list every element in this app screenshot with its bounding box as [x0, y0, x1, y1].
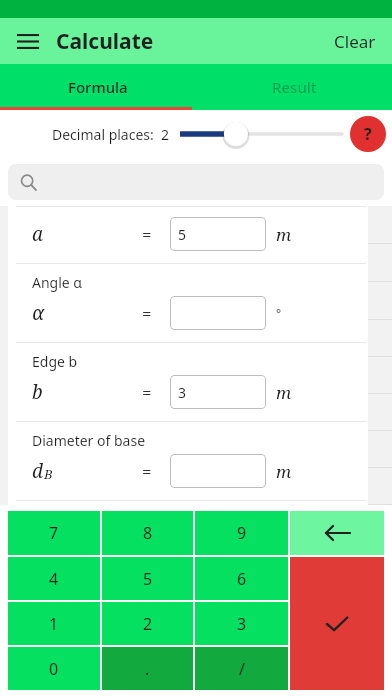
button[interactable]: Formula	[0, 64, 196, 110]
button[interactable]: 5	[102, 557, 193, 600]
staticText: α	[32, 300, 45, 326]
button[interactable]	[170, 454, 266, 488]
button[interactable]: Backspace	[290, 511, 384, 555]
staticText: 9	[237, 522, 247, 544]
staticText: 2	[143, 613, 153, 635]
button[interactable]: 5	[170, 217, 266, 251]
staticText: m	[276, 460, 292, 483]
button[interactable]: 0	[8, 647, 100, 690]
button[interactable]: 7	[8, 511, 100, 555]
button[interactable]: Result	[196, 64, 392, 110]
staticText: 8	[143, 522, 153, 544]
staticText: 0	[49, 658, 59, 680]
staticText: 1	[49, 613, 59, 635]
button[interactable]: Open navigation menu	[8, 21, 48, 61]
staticText: 6	[237, 568, 247, 590]
button[interactable]: 9	[195, 511, 288, 555]
button[interactable]	[170, 296, 266, 330]
staticText: ?	[364, 123, 372, 145]
button[interactable]: 1	[8, 602, 100, 645]
button[interactable]: 8	[102, 511, 193, 555]
staticText: 7	[49, 522, 59, 544]
button[interactable]: 6	[195, 557, 288, 600]
button[interactable]: Help	[350, 116, 386, 152]
button[interactable]: Clear	[318, 20, 392, 63]
staticText: 4	[49, 568, 59, 590]
staticText: Calculate	[56, 27, 154, 56]
button[interactable]: Confirm	[290, 557, 384, 690]
staticText: b	[32, 379, 43, 405]
button[interactable]: 4	[8, 557, 100, 600]
staticText: 3	[178, 383, 187, 402]
button[interactable]: .	[102, 647, 193, 690]
button[interactable]: 2	[102, 602, 193, 645]
button[interactable]	[180, 110, 342, 158]
staticText: Diameter of base	[32, 431, 146, 450]
staticText: Result	[272, 77, 317, 97]
staticText: Decimal places: 2	[52, 125, 170, 144]
staticText: Formula	[68, 77, 128, 97]
staticText: d	[32, 458, 44, 484]
staticText: =	[142, 381, 170, 404]
staticText: =	[142, 302, 170, 325]
button[interactable]: 3	[195, 602, 288, 645]
staticText: 5	[178, 225, 187, 244]
staticText: Angle α	[32, 273, 83, 292]
staticText: a	[32, 221, 44, 247]
staticText: B	[44, 465, 53, 483]
staticText: =	[142, 223, 170, 246]
button[interactable]: 3	[170, 375, 266, 409]
staticText: Clear	[334, 30, 376, 53]
staticText: °	[276, 305, 282, 321]
staticText: 3	[237, 613, 247, 635]
staticText: Edge b	[32, 352, 78, 371]
staticText: m	[276, 381, 292, 404]
staticText: =	[142, 460, 170, 483]
button[interactable]	[8, 164, 384, 200]
staticText: 5	[143, 568, 153, 590]
staticText: .	[145, 658, 150, 680]
button[interactable]: /	[195, 647, 288, 690]
staticText: /	[239, 658, 245, 680]
staticText: m	[276, 223, 292, 246]
